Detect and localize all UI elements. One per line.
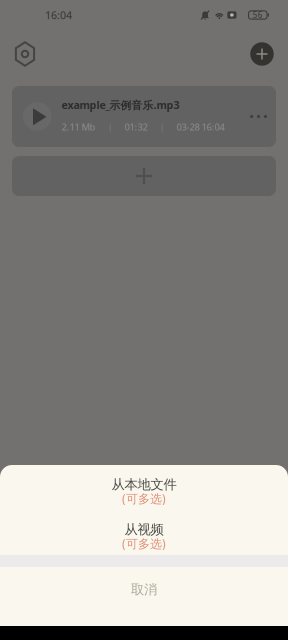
button[interactable]: example_示例音乐.mp3 xyxy=(12,86,276,147)
staticText: | xyxy=(107,121,112,133)
staticText: 2.11 Mb xyxy=(61,121,95,133)
staticText: 03-28 16:04 xyxy=(176,121,224,133)
staticText: 从本地文件 xyxy=(111,476,176,493)
staticText: (可多选) xyxy=(122,535,166,551)
button[interactable]: 从本地文件 xyxy=(0,465,288,510)
staticText: example_示例音乐.mp3 xyxy=(61,98,179,112)
staticText: | xyxy=(159,121,164,133)
staticText: 从视频 xyxy=(124,521,163,538)
button[interactable]: Settings xyxy=(8,37,42,71)
staticText: 取消 xyxy=(131,581,157,598)
staticText: 56 xyxy=(253,10,263,20)
button[interactable]: 从视频 xyxy=(0,510,288,555)
staticText: 01:32 xyxy=(124,121,147,133)
button[interactable]: Add xyxy=(245,37,279,71)
staticText: 16:04 xyxy=(45,8,72,22)
staticText: (可多选) xyxy=(122,490,166,506)
button[interactable]: 取消 xyxy=(0,567,288,612)
